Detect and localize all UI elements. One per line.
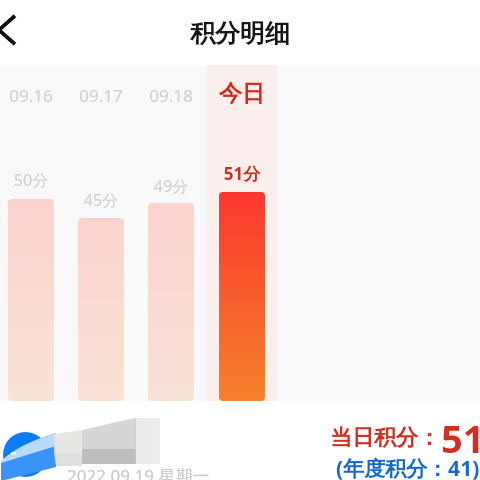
staticText: 51分: [207, 162, 277, 185]
staticText: 49分: [136, 175, 206, 197]
button[interactable]: [219, 192, 265, 401]
staticText: (年度积分：41): [336, 454, 480, 480]
staticText: 45分: [66, 189, 136, 211]
staticText: 09.16: [0, 84, 66, 107]
staticText: 09.18: [136, 84, 206, 107]
staticText: 2022.09.19 星期一: [67, 464, 210, 480]
button[interactable]: [148, 203, 194, 401]
button[interactable]: Back: [0, 7, 29, 53]
staticText: 当日积分：: [330, 424, 440, 452]
staticText: 09.17: [66, 84, 136, 107]
button[interactable]: [8, 199, 54, 401]
staticText: 50分: [0, 169, 66, 191]
staticText: 51: [441, 412, 480, 464]
button[interactable]: [78, 218, 124, 401]
staticText: 今日: [207, 79, 277, 108]
staticText: 积分明细: [190, 18, 290, 49]
